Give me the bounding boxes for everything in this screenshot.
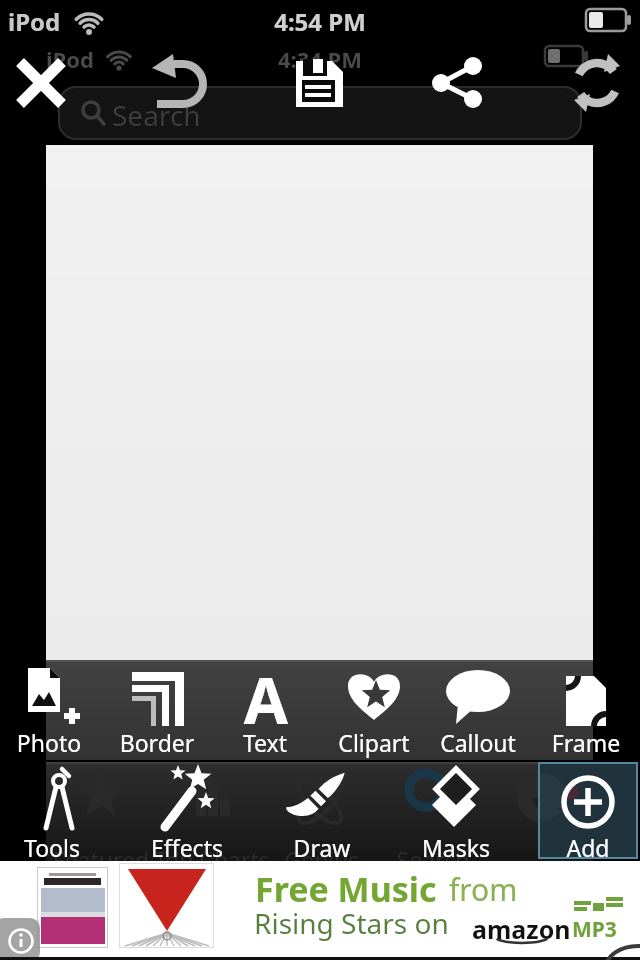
staticText: Rising Stars on <box>254 904 449 942</box>
button[interactable] <box>294 57 346 111</box>
button[interactable] <box>0 918 40 960</box>
staticText: Genius <box>172 844 472 875</box>
button[interactable] <box>538 762 638 859</box>
staticText: Effects <box>37 832 337 863</box>
staticText: Featured <box>0 844 251 875</box>
button[interactable] <box>412 764 504 860</box>
staticText: Draw <box>172 832 472 863</box>
staticText: Top Charts <box>62 844 362 875</box>
staticText: Add <box>438 832 640 863</box>
staticText: Border <box>7 727 307 758</box>
staticText: Masks <box>306 832 606 863</box>
button[interactable] <box>568 54 626 112</box>
staticText: Text <box>115 727 415 758</box>
staticText: Tools <box>0 832 202 863</box>
button[interactable] <box>442 662 514 758</box>
staticText: 4:34 PM <box>170 44 470 74</box>
staticText: 4:54 PM <box>170 5 470 38</box>
button[interactable] <box>140 764 236 860</box>
button[interactable] <box>16 764 104 860</box>
staticText: Frame <box>436 727 640 758</box>
staticText: iPod <box>8 5 61 38</box>
staticText: amazon <box>472 912 571 946</box>
button[interactable] <box>432 52 488 108</box>
staticText: from <box>449 869 518 910</box>
staticText: Callout <box>328 727 628 758</box>
staticText: Free Music <box>255 866 437 912</box>
staticText: A <box>116 656 416 743</box>
button[interactable] <box>0 861 640 957</box>
button[interactable] <box>229 662 301 758</box>
button[interactable] <box>121 662 193 758</box>
staticText: MP3 <box>572 915 617 944</box>
staticText: Clipart <box>224 727 524 758</box>
staticText: Search <box>112 96 201 134</box>
button[interactable] <box>550 662 622 758</box>
staticText: iPod <box>46 44 94 74</box>
staticText: Photo <box>0 727 199 758</box>
button[interactable] <box>150 50 212 112</box>
staticText: Search <box>283 844 583 875</box>
button[interactable] <box>338 662 410 758</box>
button[interactable] <box>10 52 72 114</box>
button[interactable] <box>14 662 86 758</box>
button[interactable] <box>276 764 368 860</box>
